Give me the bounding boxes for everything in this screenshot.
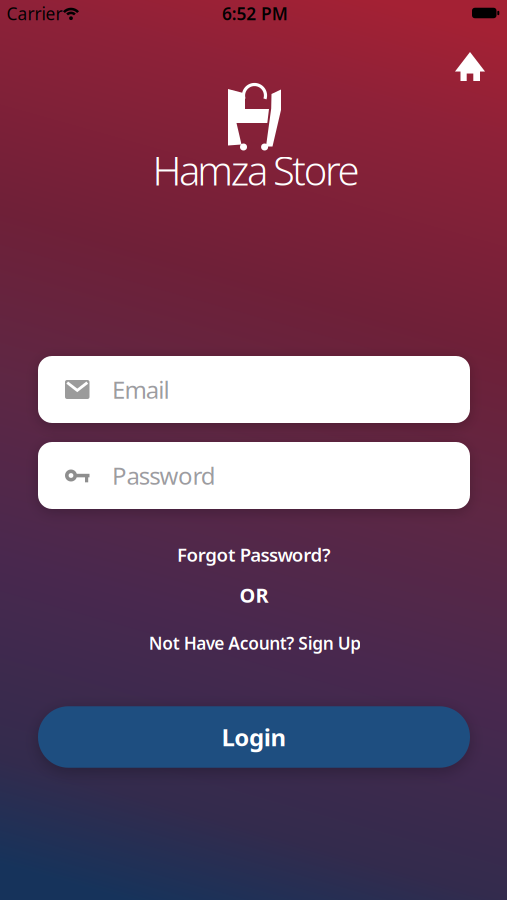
button[interactable]: Login [38,706,470,768]
staticText: Email [112,374,170,405]
button[interactable]: Email [38,356,470,423]
staticText: OR [239,582,268,608]
button[interactable]: Not Have Acount? Sign Up [149,631,361,654]
staticText: Login [222,721,286,753]
button[interactable]: Home [455,52,485,81]
staticText: Password [112,460,216,491]
staticText: 6:52 PM [222,2,288,25]
staticText: Not Have Acount? Sign Up [149,631,361,654]
staticText: Hamza Store [152,143,359,196]
staticText: Forgot Password? [177,542,331,567]
button[interactable]: Forgot Password? [177,542,331,567]
button[interactable]: Password [38,442,470,509]
staticText: Carrier [6,2,62,25]
